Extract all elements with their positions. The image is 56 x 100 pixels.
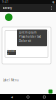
- staticText: Dolor sit: [19, 39, 31, 43]
- button[interactable]: More options: [49, 4, 54, 12]
- staticText: ▾▮: [52, 0, 54, 3]
- button[interactable]: Lorem ipsum: [17, 30, 47, 35]
- staticText: Label Menu: [3, 78, 19, 82]
- button[interactable]: Button: [7, 50, 16, 55]
- staticText: Placeholder text: [19, 35, 41, 38]
- button[interactable]: Placeholder text: [17, 35, 47, 39]
- staticText: Lorem ipsum: [19, 31, 36, 34]
- button[interactable]: Add: [48, 89, 52, 93]
- button[interactable]: Home: [23, 94, 32, 100]
- staticText: 9:41: [2, 0, 9, 4]
- button[interactable]: Recents: [40, 94, 49, 100]
- button[interactable]: Dolor sit: [17, 39, 47, 43]
- staticText: Activity: [2, 6, 11, 10]
- button[interactable]: Back: [7, 94, 16, 100]
- staticText: Button: [7, 49, 16, 56]
- staticText: ◀: [11, 95, 13, 98]
